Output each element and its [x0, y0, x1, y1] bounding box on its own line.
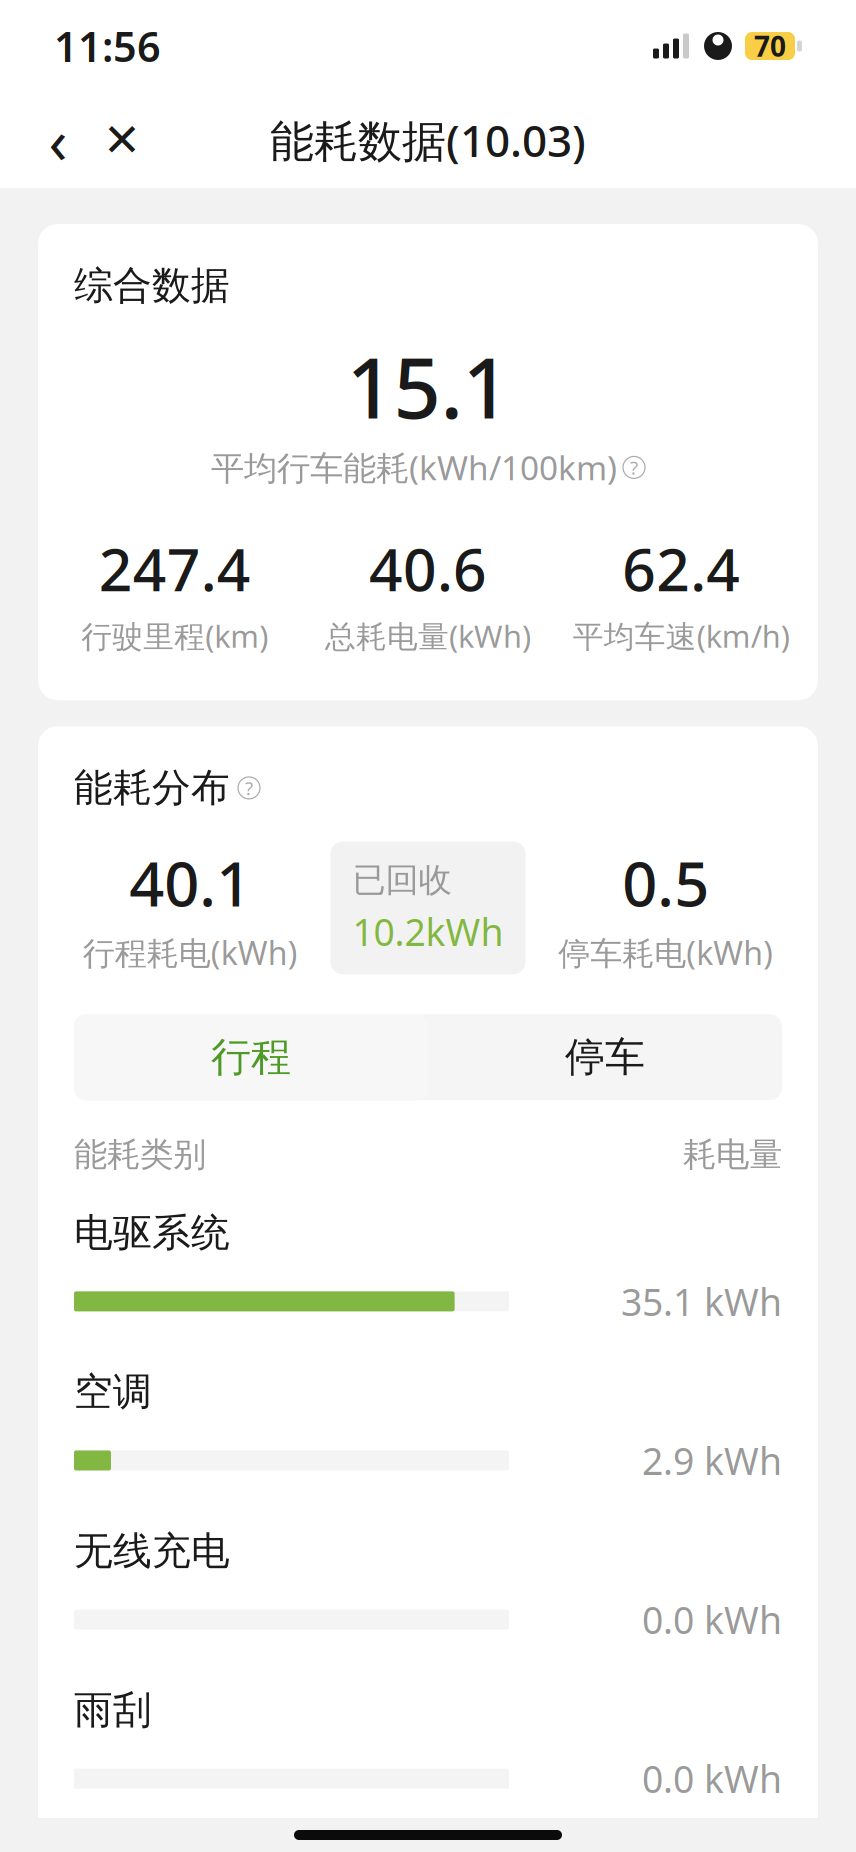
staticText: 已回收	[352, 860, 451, 901]
staticText: 总耗电量(kWh)	[325, 615, 531, 656]
staticText: 停车	[565, 1033, 645, 1082]
staticText: 0.0 kWh	[642, 1595, 782, 1644]
staticText: 能耗数据(10.03)	[270, 111, 586, 169]
staticText: 15.1	[346, 331, 509, 441]
staticText: 70	[754, 27, 786, 65]
button[interactable]: 行程	[74, 1014, 428, 1100]
staticText: ?	[630, 455, 638, 480]
staticText: 耗电量	[683, 1134, 782, 1175]
staticText: 无线充电	[74, 1527, 230, 1575]
staticText: ‹	[48, 99, 67, 181]
button[interactable]: Back	[26, 108, 90, 172]
staticText: 行驶里程(km)	[81, 615, 268, 656]
staticText: 空调	[74, 1368, 152, 1416]
staticText: 0.5	[622, 842, 709, 923]
staticText: 62.4	[622, 529, 740, 607]
staticText: 35.1 kWh	[621, 1277, 782, 1326]
staticText: 能耗类别	[74, 1134, 206, 1175]
button[interactable]: 停车	[428, 1014, 782, 1100]
staticText: 10.2kWh	[352, 907, 503, 956]
staticText: 行程耗电(kWh)	[83, 931, 298, 974]
staticText: 雨刮	[74, 1686, 152, 1734]
staticText: 40.6	[369, 529, 487, 607]
staticText: 平均车速(km/h)	[573, 615, 790, 656]
staticText: 电驱系统	[74, 1209, 230, 1257]
staticText: ?	[245, 775, 253, 800]
staticText: 平均行车能耗(kWh/100km)	[211, 445, 617, 490]
button[interactable]: Close	[90, 108, 154, 172]
staticText: 停车耗电(kWh)	[558, 931, 773, 974]
staticText: 40.1	[129, 842, 251, 923]
staticText: 行程	[211, 1033, 291, 1082]
button[interactable]: 关于平均行车能耗	[623, 456, 645, 478]
staticText: 能耗分布	[74, 764, 230, 812]
staticText: 11:56	[54, 19, 161, 73]
staticText: 247.4	[99, 529, 251, 607]
staticText: 0.0 kWh	[642, 1754, 782, 1803]
button[interactable]: 关于能耗分布	[238, 777, 260, 799]
staticText: ✕	[103, 114, 141, 166]
staticText: 2.9 kWh	[642, 1436, 782, 1485]
staticText: 综合数据	[74, 262, 230, 309]
